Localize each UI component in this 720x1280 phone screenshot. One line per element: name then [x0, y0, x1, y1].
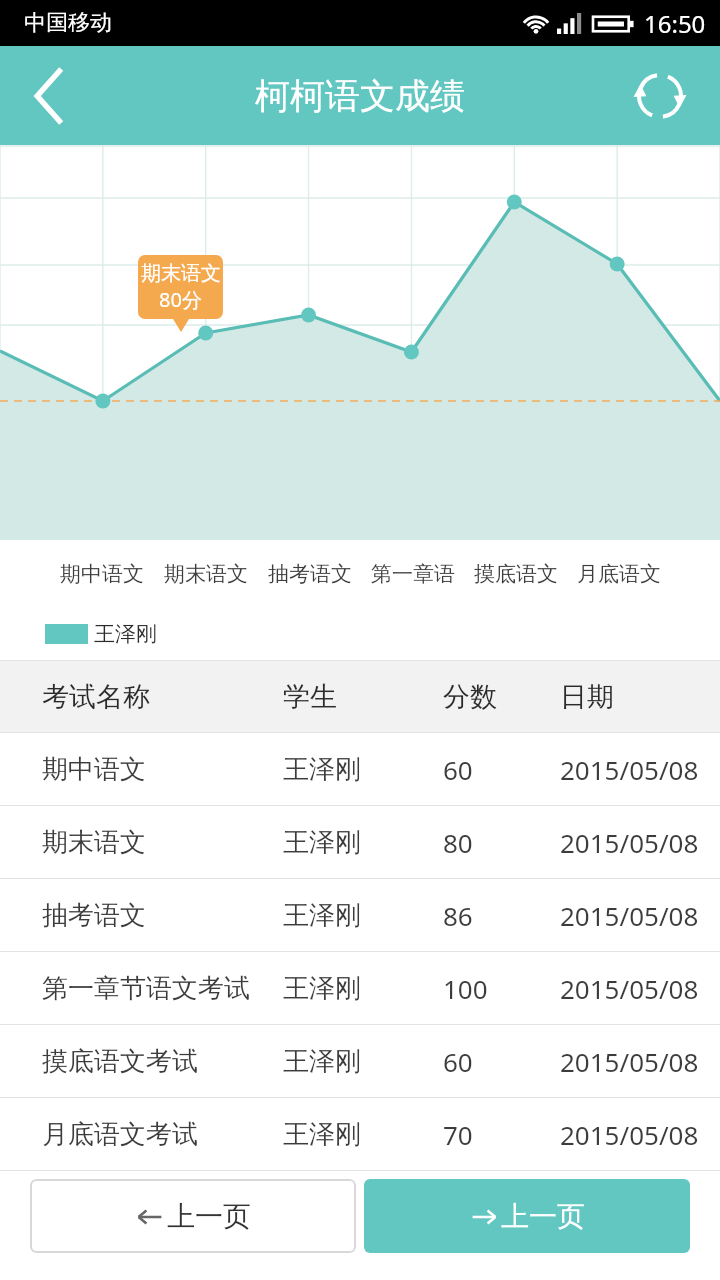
staticText: 王泽刚 — [283, 826, 361, 859]
staticText: 日期 — [560, 680, 614, 714]
staticText: 王泽刚 — [94, 621, 157, 647]
staticText: 期末语文 — [42, 826, 146, 859]
staticText: 抽考语文 — [42, 899, 146, 932]
staticText: 2015/05/08 — [560, 971, 699, 1006]
button[interactable]: 抽考语文 — [0, 879, 720, 952]
staticText: 2015/05/08 — [560, 1117, 699, 1152]
staticText: 上一页 — [501, 1199, 585, 1234]
staticText: 考试名称 — [42, 680, 150, 714]
staticText: 月底语文考试 — [42, 1118, 198, 1151]
button[interactable]: 上一页 — [30, 1179, 356, 1253]
staticText: 期末语文 — [141, 261, 221, 286]
button[interactable]: Back — [0, 46, 100, 145]
staticText: 期中语文 — [60, 561, 144, 587]
staticText: 摸底语文考试 — [42, 1045, 198, 1078]
staticText: 60 — [443, 1044, 473, 1079]
staticText: 2015/05/08 — [560, 898, 699, 933]
staticText: 王泽刚 — [283, 1045, 361, 1078]
staticText: 摸底语文 — [474, 561, 558, 587]
button[interactable]: 第一章节语文考试 — [0, 952, 720, 1025]
staticText: 86 — [443, 898, 473, 933]
staticText: 王泽刚 — [283, 899, 361, 932]
staticText: 2015/05/08 — [560, 825, 699, 860]
button[interactable]: 摸底语文考试 — [0, 1025, 720, 1098]
staticText: 2015/05/08 — [560, 1044, 699, 1079]
staticText: 王泽刚 — [283, 1118, 361, 1151]
staticText: 16:50 — [644, 7, 706, 40]
staticText: 中国移动 — [24, 9, 112, 37]
staticText: 王泽刚 — [283, 753, 361, 786]
staticText: 第一章语 — [371, 561, 455, 587]
staticText: 月底语文 — [577, 561, 661, 587]
staticText: 2015/05/08 — [560, 752, 699, 787]
button[interactable]: Refresh — [620, 56, 700, 136]
staticText: 第一章节语文考试 — [42, 972, 250, 1005]
staticText: 70 — [443, 1117, 473, 1152]
staticText: 60 — [443, 752, 473, 787]
staticText: 100 — [443, 971, 488, 1006]
staticText: 学生 — [283, 680, 337, 714]
button[interactable]: 期末语文 — [0, 806, 720, 879]
staticText: 抽考语文 — [268, 561, 352, 587]
staticText: 上一页 — [167, 1199, 251, 1234]
staticText: 期中语文 — [42, 753, 146, 786]
staticText: 柯柯语文成绩 — [255, 74, 465, 118]
staticText: 分数 — [443, 680, 497, 714]
staticText: 80 — [443, 825, 473, 860]
staticText: 80分 — [159, 286, 202, 313]
staticText: 王泽刚 — [283, 972, 361, 1005]
button[interactable]: 期中语文 — [0, 733, 720, 806]
staticText: 期末语文 — [164, 561, 248, 587]
button[interactable]: 月底语文考试 — [0, 1098, 720, 1171]
button[interactable]: 上一页 — [364, 1179, 690, 1253]
